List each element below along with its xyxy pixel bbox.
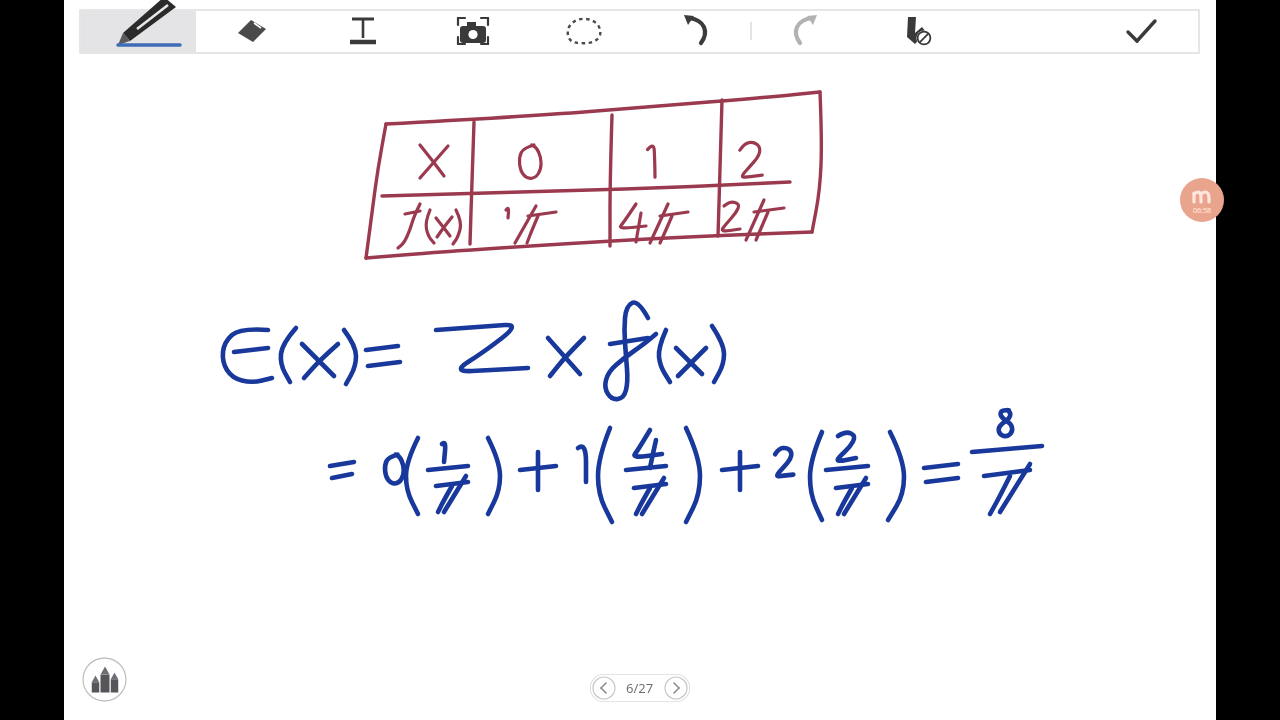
button[interactable]: Undo [672, 11, 718, 52]
button[interactable]: Disable touch [894, 11, 940, 52]
button[interactable]: Done [1118, 11, 1164, 52]
button[interactable]: Eraser [229, 11, 275, 52]
button[interactable]: Lasso select [561, 11, 607, 52]
button[interactable]: Pen settings [82, 657, 127, 702]
button[interactable]: Text [340, 11, 386, 52]
button[interactable]: Pen [81, 11, 196, 52]
button[interactable] [590, 674, 690, 702]
button[interactable]: Redo [783, 11, 829, 52]
button[interactable]: Camera [450, 11, 496, 52]
